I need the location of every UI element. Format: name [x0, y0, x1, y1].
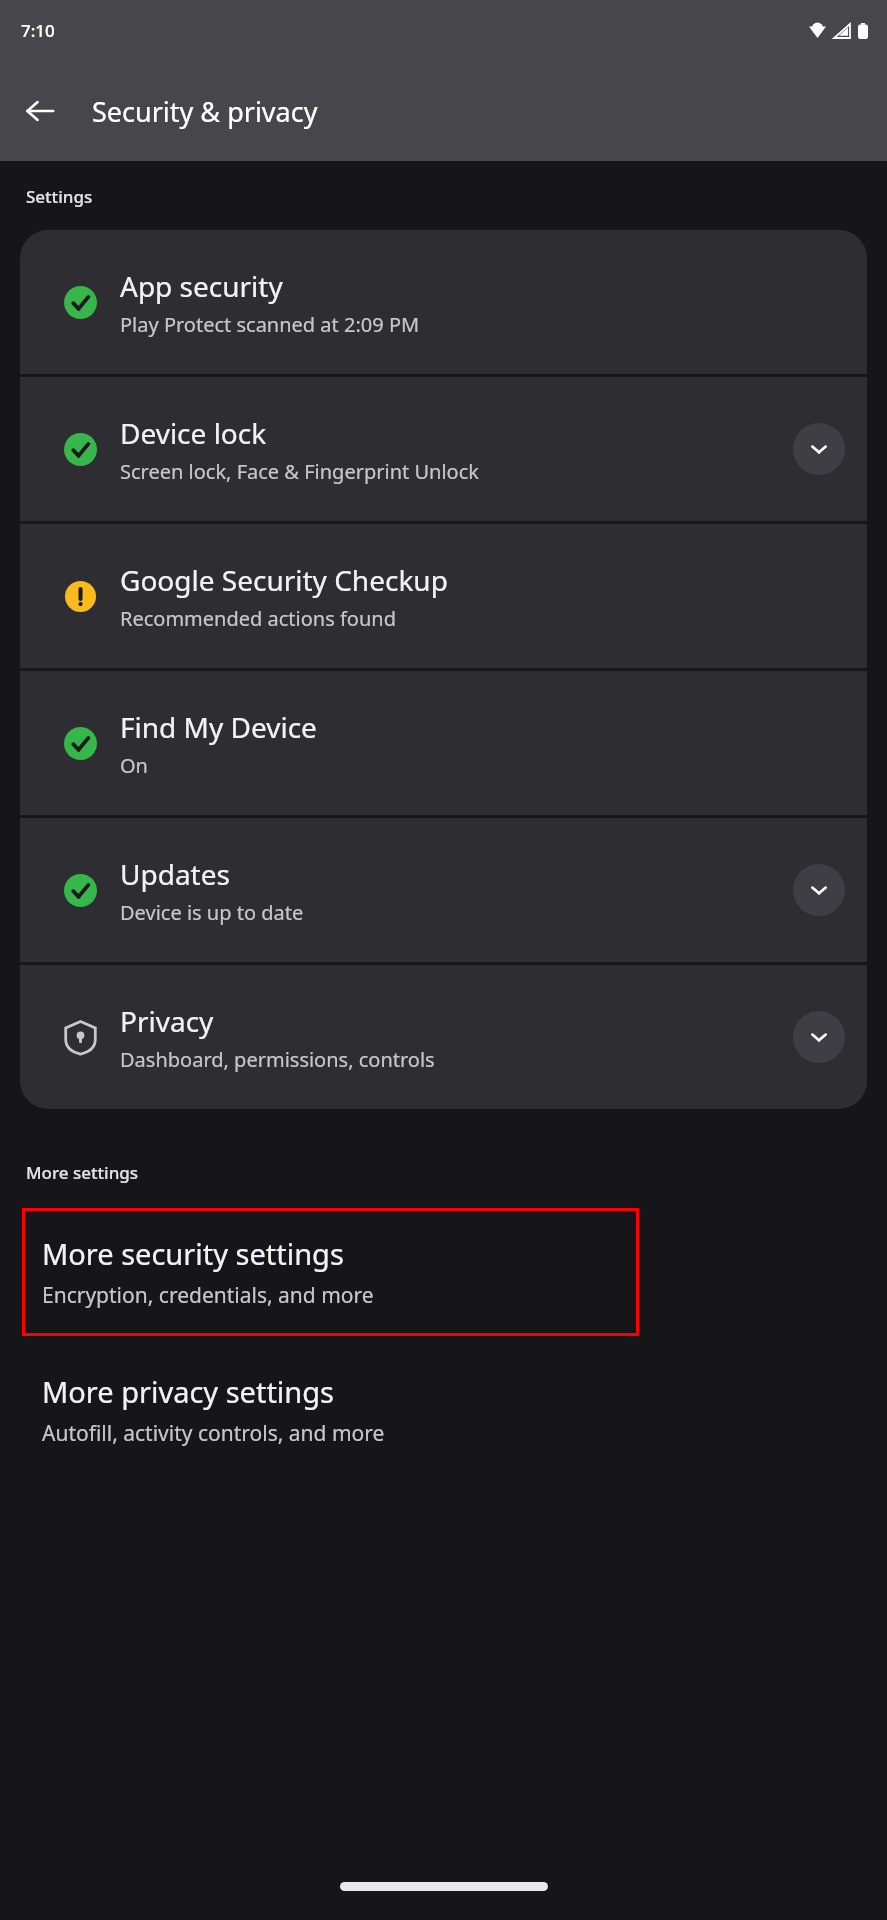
staticText: Privacy — [120, 1002, 214, 1040]
button[interactable]: Device lock — [20, 377, 867, 521]
staticText: On — [120, 752, 148, 779]
button[interactable]: App security — [20, 230, 867, 374]
button[interactable]: Google Security Checkup — [20, 524, 867, 668]
staticText: Autofill, activity controls, and more — [42, 1419, 385, 1448]
button[interactable]: Updates — [20, 818, 867, 962]
button[interactable]: Privacy — [20, 965, 867, 1109]
staticText: Device lock — [120, 414, 267, 452]
staticText: More security settings — [42, 1234, 344, 1273]
staticText: Recommended actions found — [120, 605, 396, 632]
button[interactable]: Find My Device — [20, 671, 867, 815]
button[interactable]: More security settings — [22, 1208, 639, 1336]
staticText: More privacy settings — [42, 1372, 335, 1411]
staticText: App security — [120, 267, 283, 305]
button[interactable]: Expand Updates — [793, 864, 845, 916]
staticText: Find My Device — [120, 708, 317, 746]
staticText: Play Protect scanned at 2:09 PM — [120, 311, 420, 338]
staticText: Security & privacy — [92, 93, 318, 130]
button[interactable]: More privacy settings — [0, 1364, 887, 1456]
button[interactable]: Expand Device lock — [793, 423, 845, 475]
staticText: Google Security Checkup — [120, 561, 448, 599]
staticText: More settings — [26, 1161, 139, 1184]
button[interactable]: Back — [8, 79, 72, 143]
staticText: 7:10 — [21, 19, 55, 42]
staticText: Settings — [26, 185, 93, 208]
staticText: Screen lock, Face & Fingerprint Unlock — [120, 458, 479, 485]
staticText: Encryption, credentials, and more — [42, 1281, 374, 1310]
staticText: Dashboard, permissions, controls — [120, 1046, 435, 1073]
staticText: Updates — [120, 855, 230, 893]
button[interactable]: Expand Privacy — [793, 1011, 845, 1063]
staticText: Device is up to date — [120, 899, 304, 926]
